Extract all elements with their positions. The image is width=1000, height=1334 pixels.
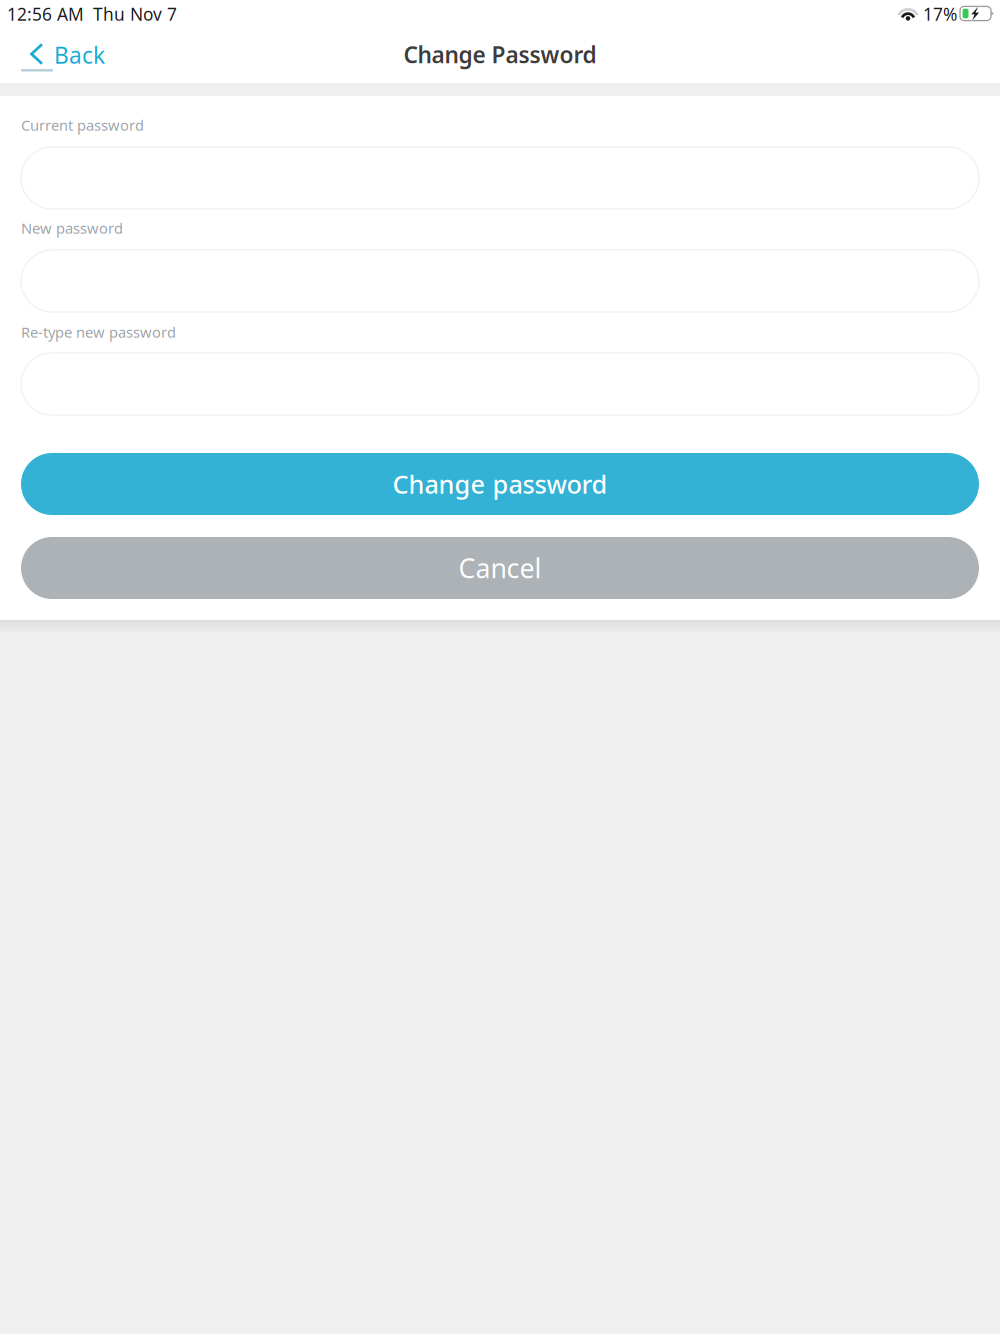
button[interactable]: Change password — [21, 453, 979, 515]
staticText: Cancel — [458, 550, 541, 586]
staticText: New password — [21, 218, 123, 238]
staticText: Change Password — [403, 39, 596, 69]
staticText: Current password — [21, 115, 144, 135]
staticText: Change password — [392, 467, 607, 501]
button[interactable]: Back — [21, 31, 125, 79]
staticText: Thu Nov 7 — [93, 2, 177, 25]
staticText: 12:56 AM — [7, 2, 84, 25]
staticText: Back — [54, 40, 105, 70]
staticText: Re-type new password — [21, 322, 176, 342]
button[interactable]: Cancel — [21, 537, 979, 599]
staticText: 17% — [923, 2, 957, 25]
